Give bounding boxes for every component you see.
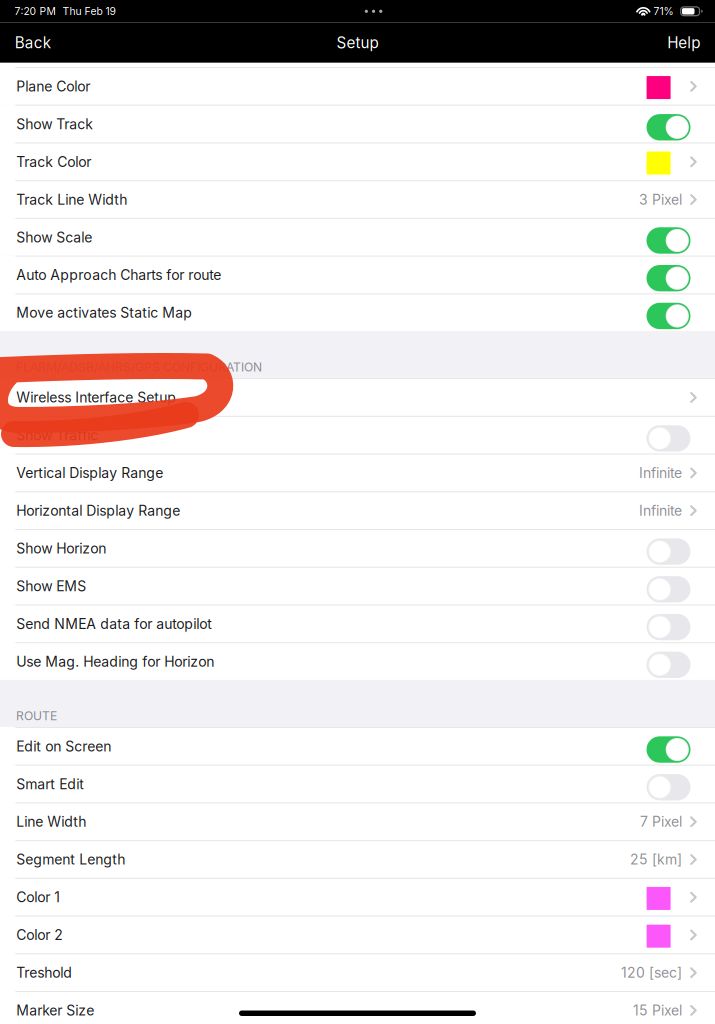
staticText: 7:20 PM — [14, 5, 55, 18]
button[interactable]: Marker Size — [0, 991, 715, 1024]
button[interactable]: Wireless Interface Setup — [0, 378, 715, 416]
staticText: 7 Pixel — [640, 813, 682, 830]
button[interactable]: Track Color — [0, 142, 715, 180]
staticText: Color 2 — [16, 926, 63, 943]
button[interactable]: Horizontal Display Range — [0, 491, 715, 529]
button[interactable]: Track Line Width — [0, 180, 715, 218]
staticText: Show Horizon — [16, 540, 106, 557]
staticText: Show Track — [16, 116, 93, 132]
staticText: 15 Pixel — [633, 1002, 682, 1019]
staticText: Wireless Interface Setup — [16, 389, 176, 406]
button[interactable]: Move activates Static Map — [0, 293, 715, 331]
button[interactable]: Use Mag. Heading for Horizon — [0, 642, 715, 680]
button[interactable]: Line Width — [0, 802, 715, 840]
staticText: Auto Approach Charts for route — [16, 266, 221, 283]
staticText: Move activates Static Map — [16, 304, 192, 321]
staticText: 25 [km] — [630, 851, 682, 868]
staticText: Track Color — [16, 153, 91, 170]
staticText: ROUTE — [16, 708, 57, 723]
staticText: 3 Pixel — [639, 191, 682, 208]
staticText: Track Line Width — [16, 191, 127, 208]
staticText: 120 [sec] — [621, 964, 682, 981]
staticText: Smart Edit — [16, 776, 84, 792]
staticText: Line Width — [16, 813, 86, 830]
staticText: 71% — [653, 5, 673, 18]
staticText: Horizontal Display Range — [16, 502, 180, 519]
button[interactable]: Treshold — [0, 953, 715, 991]
button[interactable]: Back — [15, 27, 65, 58]
button[interactable]: Show Scale — [0, 218, 715, 256]
button[interactable]: Auto Approach Charts for route — [0, 256, 715, 293]
staticText: Send NMEA data for autopilot — [16, 615, 212, 632]
staticText: Segment Length — [16, 851, 125, 868]
button[interactable]: Segment Length — [0, 840, 715, 878]
button[interactable]: Show Track — [0, 105, 715, 142]
staticText: Show EMS — [16, 578, 86, 595]
staticText: Marker Size — [16, 1002, 94, 1019]
staticText: Show Scale — [16, 229, 92, 246]
button[interactable]: Show Horizon — [0, 529, 715, 567]
staticText: Show Traffic — [16, 427, 98, 444]
button[interactable]: Send NMEA data for autopilot — [0, 604, 715, 642]
button[interactable]: Color 2 — [0, 916, 715, 953]
button[interactable]: Plane Color — [0, 67, 715, 105]
staticText: Plane Color — [16, 78, 90, 95]
staticText: Infinite — [639, 464, 682, 481]
staticText: FLARM/ADSB/AHRS/GPS CONFIGURATION — [16, 360, 262, 374]
button[interactable]: Help — [653, 27, 700, 58]
staticText: Help — [667, 33, 700, 52]
staticText: Treshold — [16, 964, 72, 981]
staticText: Vertical Display Range — [16, 464, 163, 481]
button[interactable]: Color 1 — [0, 878, 715, 916]
button[interactable]: Smart Edit — [0, 765, 715, 802]
staticText: Setup — [336, 33, 378, 52]
staticText: Edit on Screen — [16, 738, 111, 755]
staticText: Infinite — [639, 502, 682, 519]
staticText: Back — [15, 33, 51, 52]
button[interactable]: Show EMS — [0, 567, 715, 604]
button[interactable]: Edit on Screen — [0, 727, 715, 765]
staticText: Thu Feb 19 — [62, 5, 115, 18]
button[interactable]: Show Traffic — [0, 416, 715, 453]
button[interactable]: Vertical Display Range — [0, 454, 715, 491]
staticText: Color 1 — [16, 889, 60, 906]
staticText: Use Mag. Heading for Horizon — [16, 653, 214, 670]
